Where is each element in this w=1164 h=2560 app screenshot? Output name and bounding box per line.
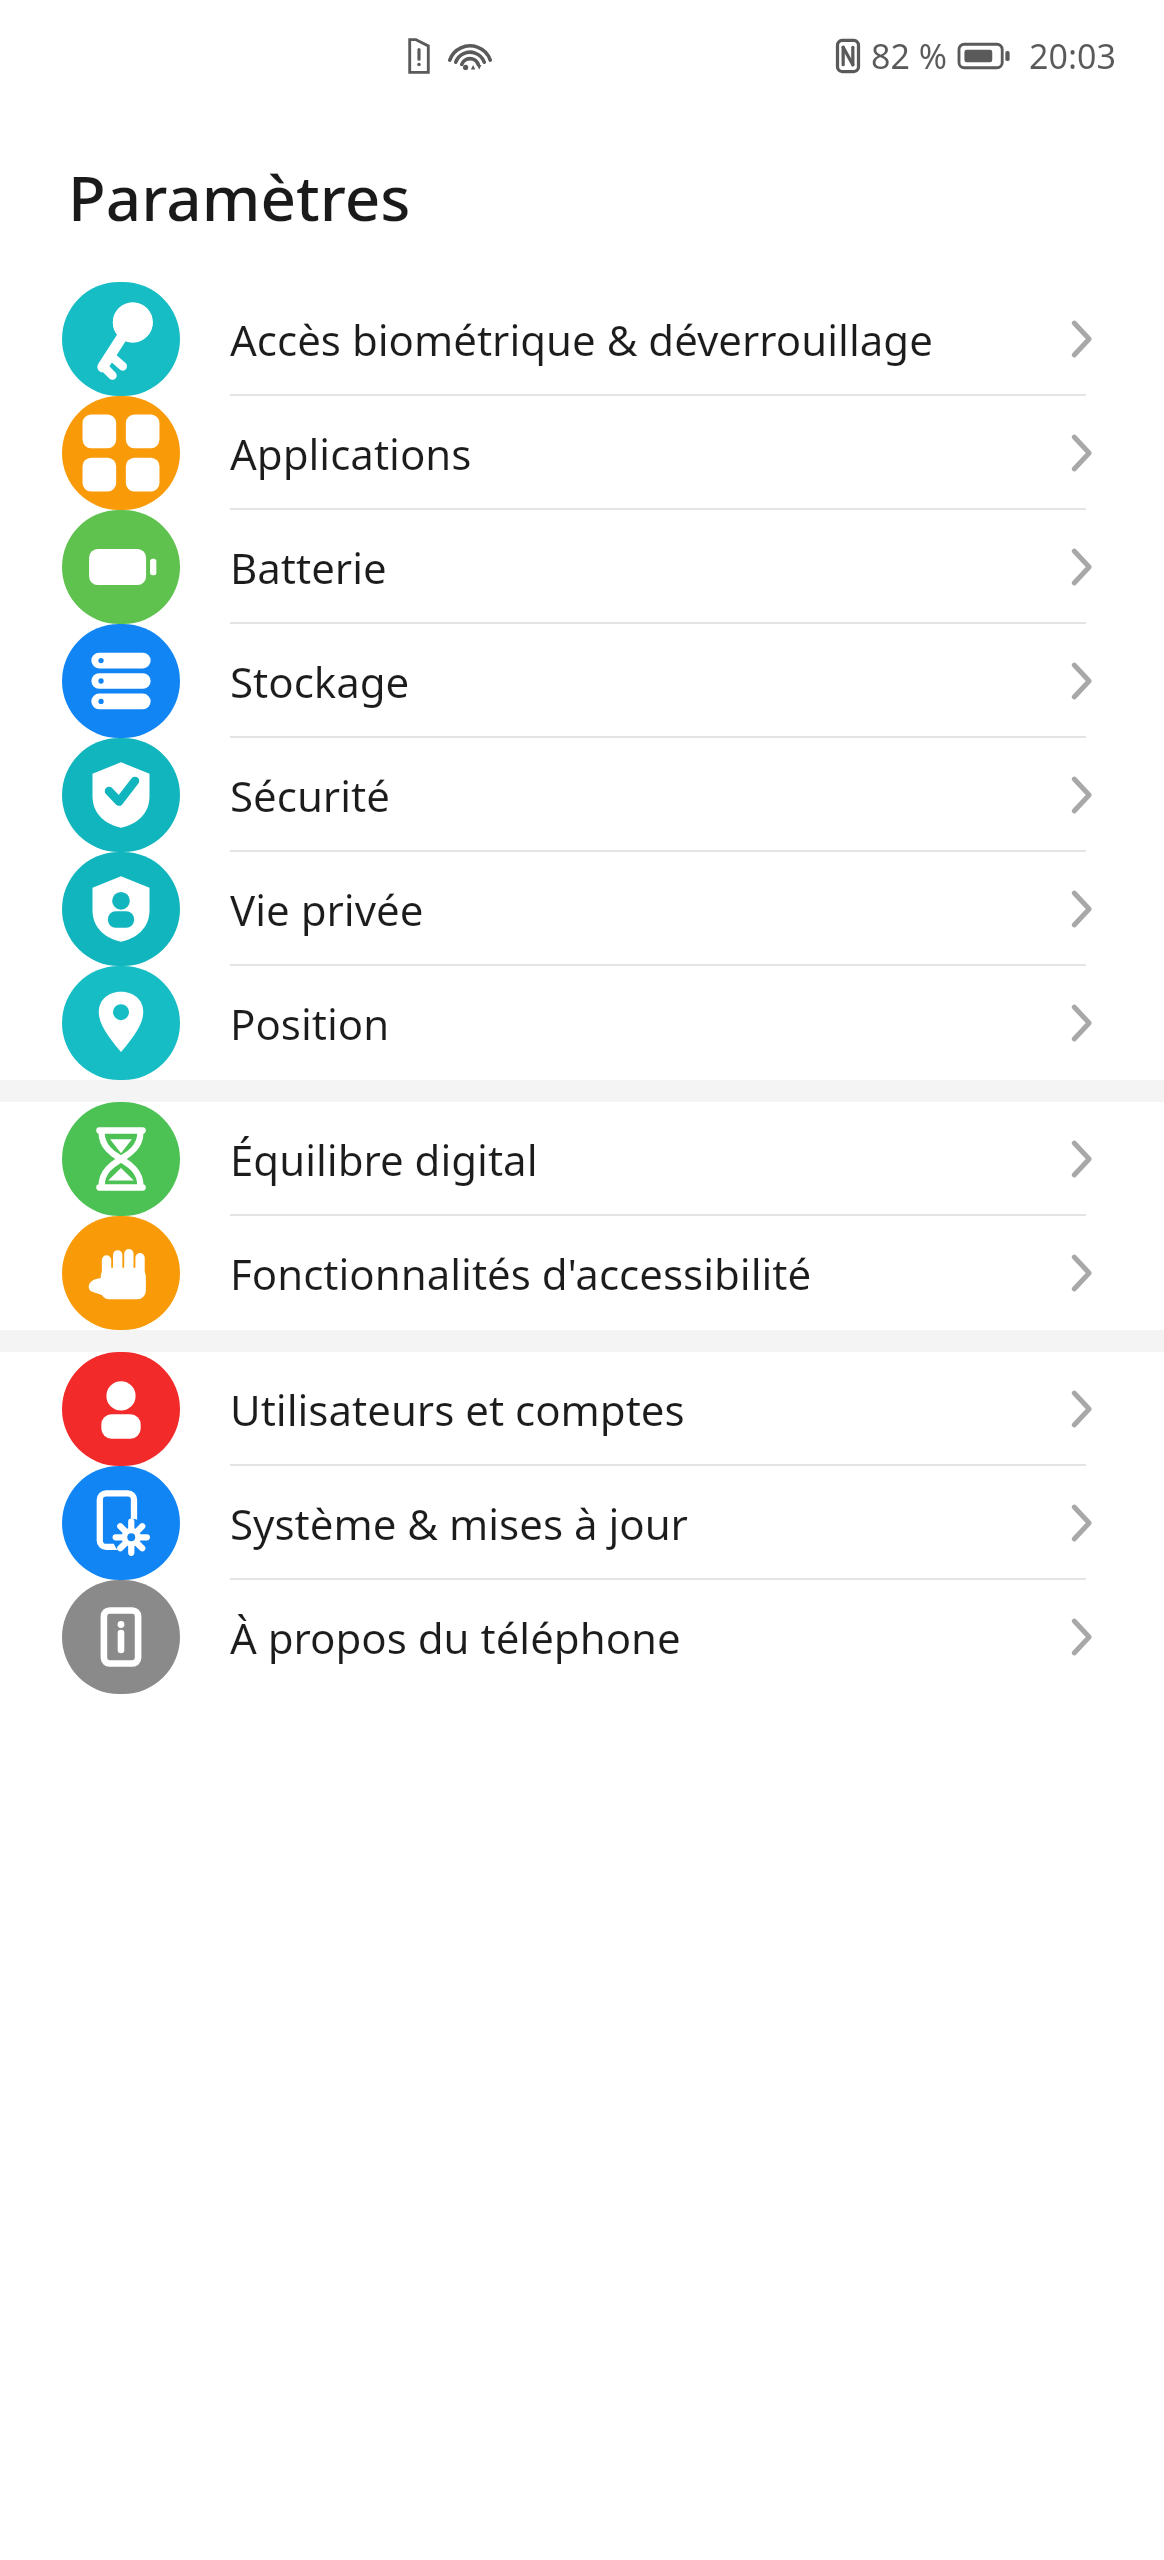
staticText: Équilibre digital xyxy=(230,1131,1064,1188)
staticText: Vie privée xyxy=(230,881,1064,938)
button[interactable]: Équilibre digital xyxy=(0,1102,1164,1216)
button[interactable]: Applications xyxy=(0,396,1164,510)
button[interactable]: Vie privée xyxy=(0,852,1164,966)
staticText: 82 % xyxy=(871,33,947,79)
button[interactable]: Stockage xyxy=(0,624,1164,738)
staticText: À propos du téléphone xyxy=(230,1609,1064,1666)
staticText: Système & mises à jour xyxy=(230,1495,1064,1552)
staticText: Fonctionnalités d'accessibilité xyxy=(230,1245,1064,1302)
button[interactable]: Batterie xyxy=(0,510,1164,624)
button[interactable]: À propos du téléphone xyxy=(0,1580,1164,1694)
staticText: Utilisateurs et comptes xyxy=(230,1381,1064,1438)
button[interactable]: Sécurité xyxy=(0,738,1164,852)
staticText: Batterie xyxy=(230,539,1064,596)
staticText: Sécurité xyxy=(230,767,1064,824)
staticText: Stockage xyxy=(230,653,1064,710)
button[interactable]: Fonctionnalités d'accessibilité xyxy=(0,1216,1164,1330)
button[interactable]: Utilisateurs et comptes xyxy=(0,1352,1164,1466)
staticText: Applications xyxy=(230,425,1064,482)
staticText: Position xyxy=(230,995,1064,1052)
button[interactable]: Position xyxy=(0,966,1164,1080)
staticText: 20:03 xyxy=(1029,33,1116,79)
staticText: Paramètres xyxy=(68,155,411,239)
button[interactable]: Système & mises à jour xyxy=(0,1466,1164,1580)
staticText: Accès biométrique & déverrouillage xyxy=(230,311,1064,368)
button[interactable]: Accès biométrique & déverrouillage xyxy=(0,282,1164,396)
